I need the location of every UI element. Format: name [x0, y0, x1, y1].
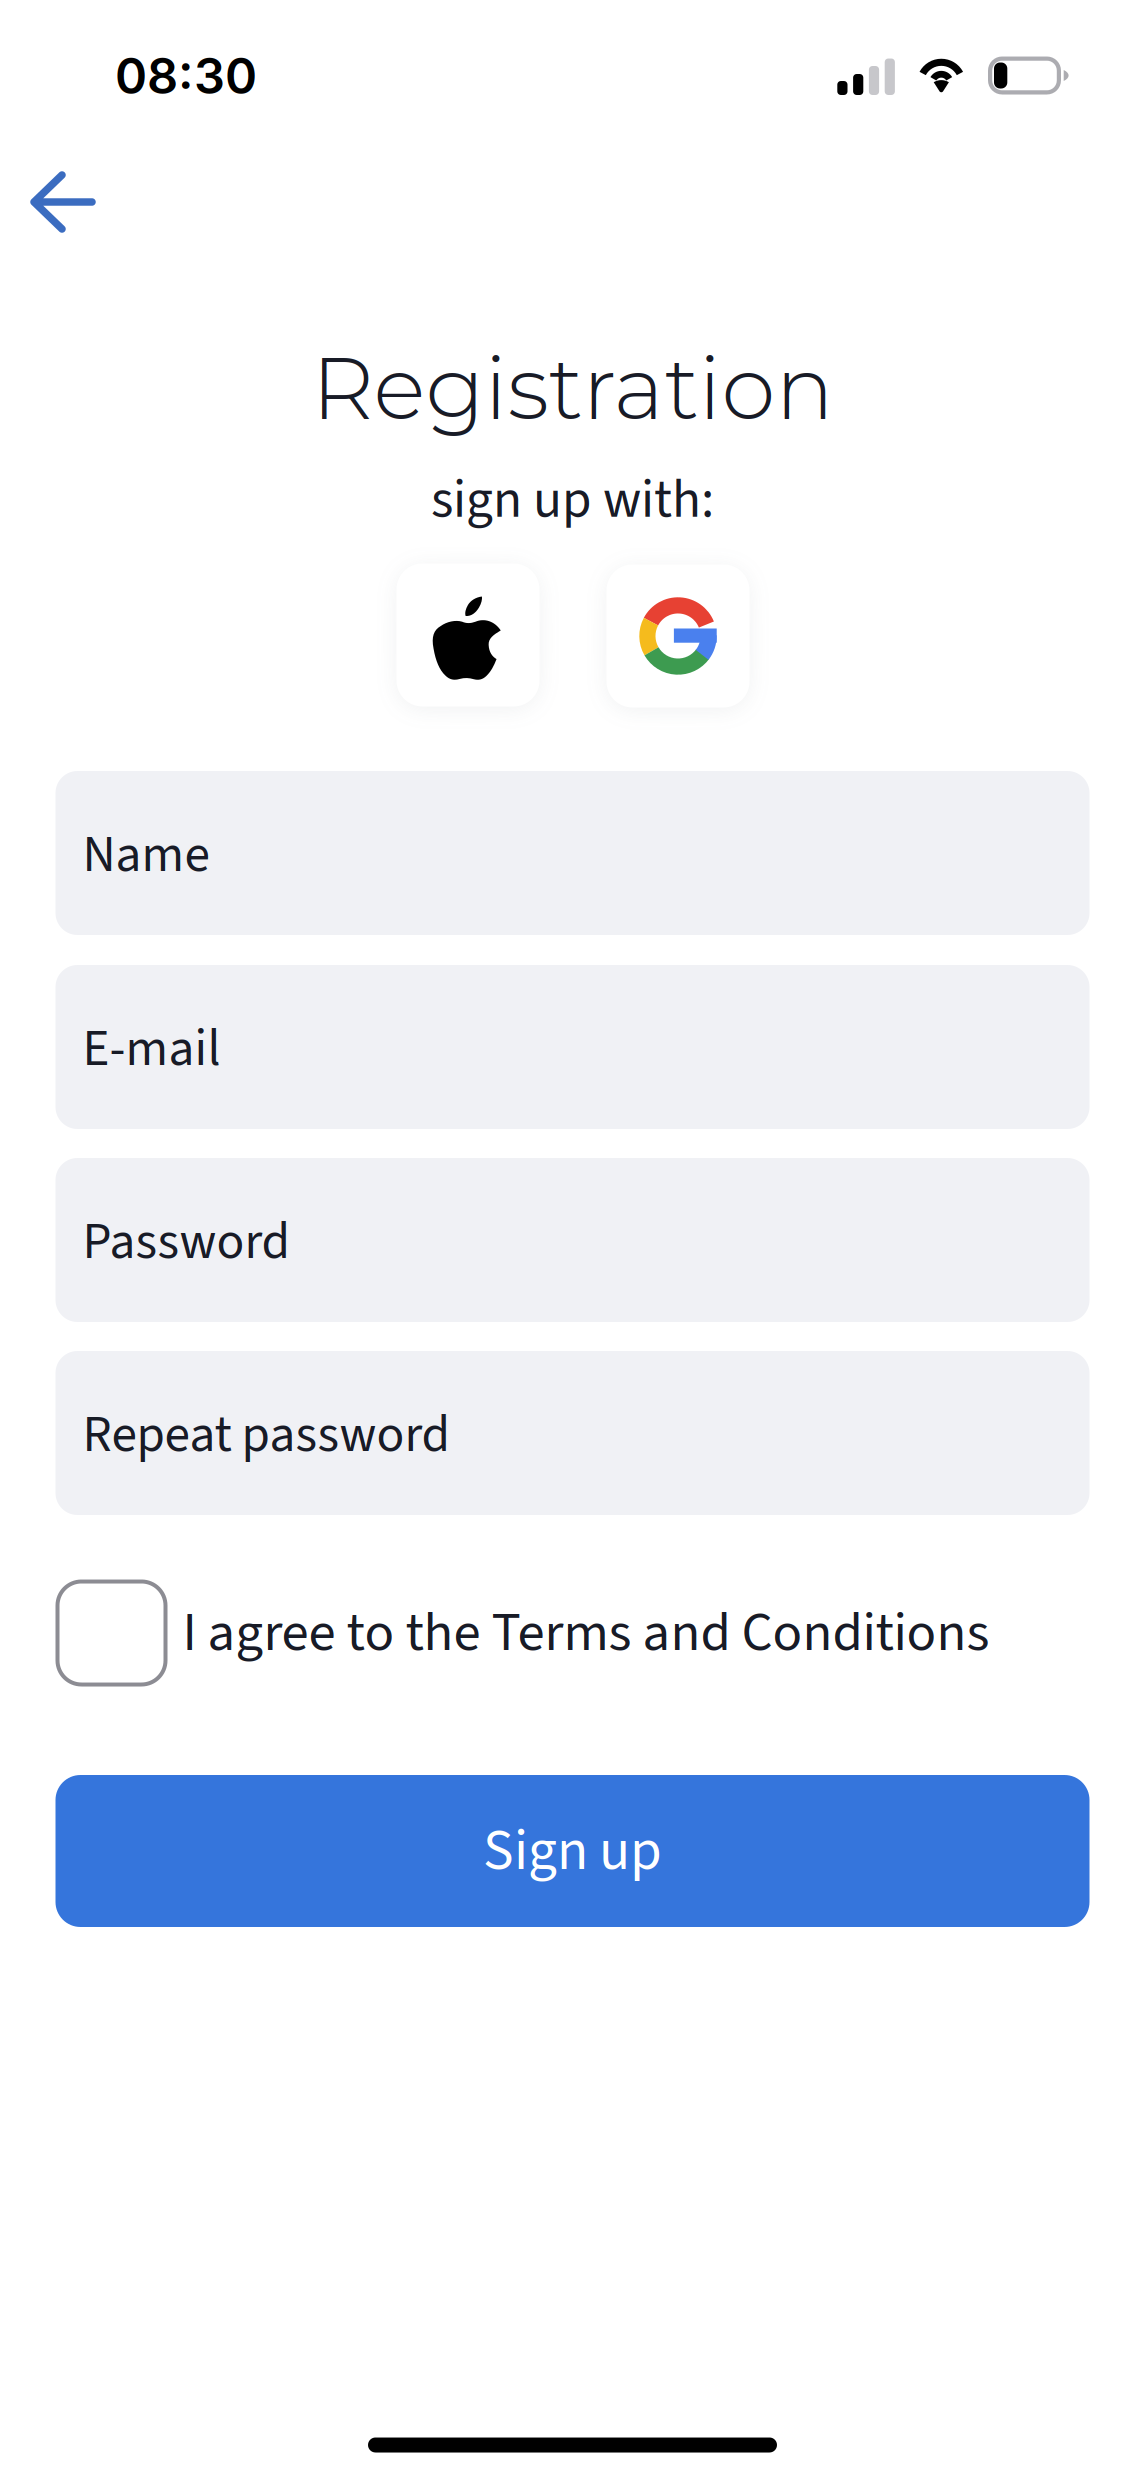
staticText: Repeat password [82, 1398, 449, 1472]
button[interactable]: E-mail [55, 965, 1089, 1129]
staticText: Registration [311, 335, 833, 441]
button[interactable]: Sign up [55, 1775, 1089, 1927]
staticText: sign up with: [431, 462, 714, 538]
staticText: Sign up [483, 1810, 662, 1892]
staticText: Name [82, 818, 209, 892]
staticText: Password [82, 1205, 289, 1279]
staticText: E-mail [82, 1012, 220, 1086]
staticText: I agree to the Terms and Conditions [182, 1594, 989, 1672]
button[interactable]: Name [55, 771, 1089, 935]
staticText: 08:30 [115, 47, 257, 105]
button[interactable]: Sign up with Google [606, 564, 749, 707]
button[interactable]: I agree to the Terms and Conditions [55, 1577, 1089, 1689]
button[interactable]: Sign up with Apple [396, 563, 539, 706]
button[interactable]: Repeat password [55, 1351, 1089, 1515]
button[interactable]: Password [55, 1158, 1089, 1322]
button[interactable]: Back [3, 147, 121, 257]
